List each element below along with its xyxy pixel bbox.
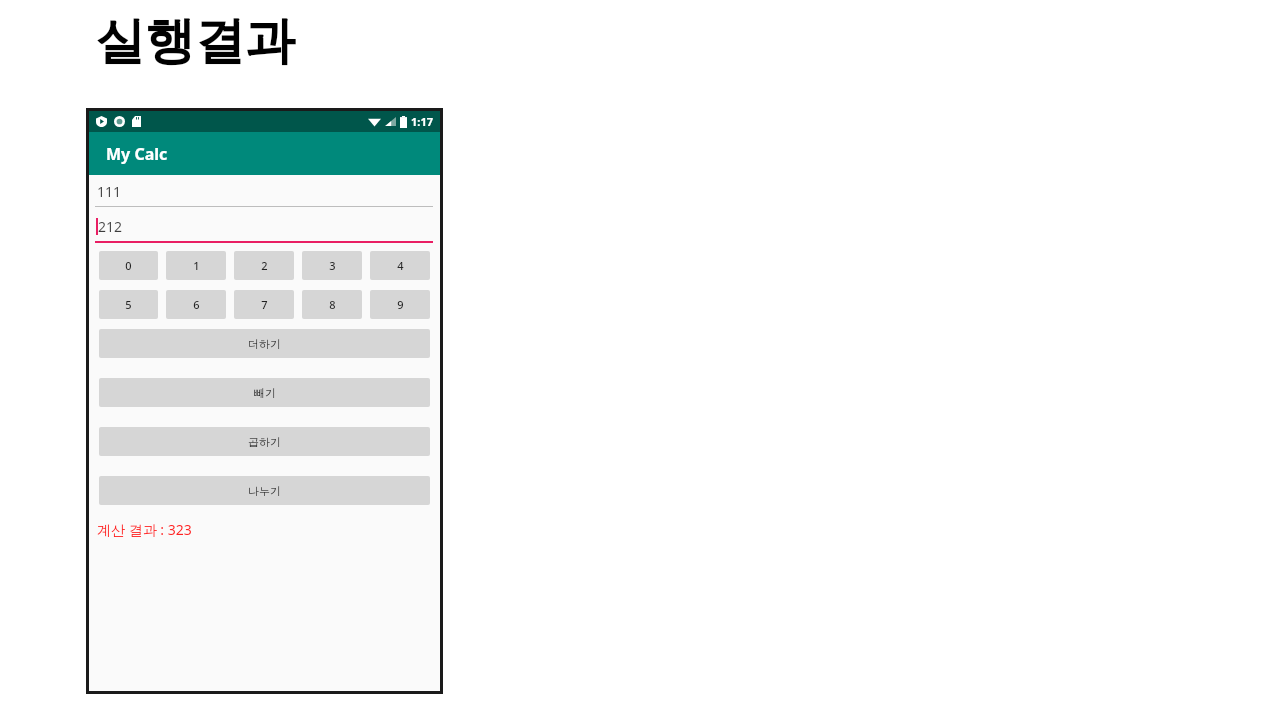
staticText: 계산 결과 : 323 [97, 520, 192, 539]
button[interactable]: 0 [99, 251, 158, 280]
staticText: 1 [193, 258, 200, 273]
button[interactable]: 나누기 [99, 476, 430, 505]
button[interactable]: 7 [234, 290, 294, 319]
button[interactable]: 1 [166, 251, 226, 280]
staticText: 1:17 [411, 114, 433, 129]
staticText: 7 [261, 297, 268, 312]
staticText: 111 [97, 182, 122, 201]
staticText: 5 [125, 297, 132, 312]
staticText: 더하기 [248, 337, 281, 351]
staticText: 빼기 [254, 386, 276, 400]
staticText: 4 [397, 258, 404, 273]
staticText: 곱하기 [248, 435, 281, 449]
staticText: 2 [261, 258, 268, 273]
button[interactable]: 9 [370, 290, 430, 319]
staticText: 나누기 [248, 484, 281, 498]
button[interactable]: 4 [370, 251, 430, 280]
staticText: 6 [193, 297, 200, 312]
staticText: 3 [329, 258, 336, 273]
button[interactable]: 8 [302, 290, 362, 319]
button[interactable]: 212 [89, 212, 440, 243]
staticText: 0 [125, 258, 132, 273]
staticText: 실행결과 [95, 10, 295, 73]
staticText: My Calc [106, 143, 168, 165]
button[interactable]: 빼기 [99, 378, 430, 407]
button[interactable]: 2 [234, 251, 294, 280]
button[interactable]: 111 [89, 177, 440, 207]
staticText: 8 [329, 297, 336, 312]
staticText: 212 [98, 217, 123, 236]
staticText: 9 [397, 297, 404, 312]
button[interactable]: 5 [99, 290, 158, 319]
button[interactable]: 더하기 [99, 329, 430, 358]
button[interactable]: 3 [302, 251, 362, 280]
button[interactable]: 6 [166, 290, 226, 319]
button[interactable]: 곱하기 [99, 427, 430, 456]
